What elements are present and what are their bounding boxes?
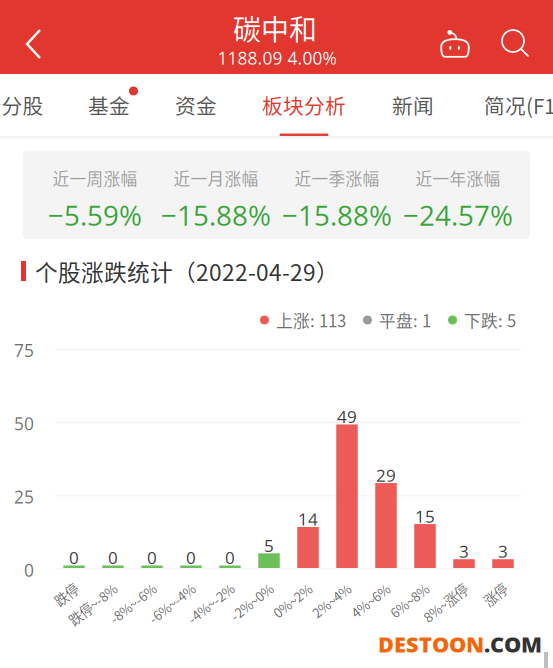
button[interactable]: 简况(F10 xyxy=(479,74,553,138)
staticText: 0 xyxy=(147,546,157,569)
staticText: −24.57% xyxy=(403,196,513,234)
staticText: 资金 xyxy=(175,90,217,120)
staticText: -6%~-4% xyxy=(144,594,199,613)
staticText: -4%~-2% xyxy=(183,594,238,613)
staticText: 板块分析 xyxy=(262,90,346,120)
staticText: 0 xyxy=(225,546,235,569)
staticText: 14 xyxy=(298,507,318,531)
staticText: 8%~涨停 xyxy=(419,593,471,612)
staticText: 近一季涨幅 xyxy=(294,166,379,190)
staticText: −15.88% xyxy=(161,196,271,234)
staticText: 49 xyxy=(337,405,357,428)
staticText: 涨停 xyxy=(482,585,508,604)
button[interactable]: 基金 xyxy=(63,74,155,138)
button[interactable]: 搜索 xyxy=(488,7,544,81)
staticText: 1188.09 4.00% xyxy=(217,46,336,70)
staticText: 0 xyxy=(108,546,118,569)
staticText: 跌停~-8% xyxy=(64,594,121,614)
staticText: −5.59% xyxy=(48,196,142,234)
staticText: 0 xyxy=(24,558,34,582)
button[interactable]: 新闻 xyxy=(367,74,459,138)
staticText: 50 xyxy=(14,412,34,435)
staticText: 0%~2% xyxy=(270,591,315,610)
staticText: −15.88% xyxy=(282,196,392,234)
staticText: .COM xyxy=(484,629,542,659)
button[interactable]: 智能助手 xyxy=(427,0,483,74)
staticText: 3 xyxy=(498,540,508,563)
staticText: 新闻 xyxy=(392,90,434,120)
staticText: -2%~0% xyxy=(227,592,277,612)
staticText: 15 xyxy=(415,504,435,528)
staticText: 跌停 xyxy=(53,585,79,604)
staticText: 近一周涨幅 xyxy=(52,166,137,190)
staticText: 0 xyxy=(186,546,196,569)
staticText: 个分股 xyxy=(0,90,43,120)
staticText: 个股涨跌统计（2022-04-29） xyxy=(35,255,339,287)
staticText: 基金 xyxy=(88,90,130,120)
staticText: 75 xyxy=(14,338,34,362)
staticText: 5 xyxy=(264,534,274,557)
staticText: -8%~-6% xyxy=(105,594,160,613)
staticText: 碳中和 xyxy=(233,8,317,48)
staticText: 平盘: 1 xyxy=(379,308,431,332)
staticText: 下跌: 5 xyxy=(464,308,516,332)
staticText: 近一年涨幅 xyxy=(415,166,500,190)
staticText: 上涨: 113 xyxy=(276,308,346,332)
staticText: 2%~4% xyxy=(309,591,354,610)
button[interactable]: 资金 xyxy=(150,74,242,138)
button[interactable]: 个分股 xyxy=(0,74,58,138)
staticText: 6%~8% xyxy=(387,591,432,610)
staticText: 29 xyxy=(376,463,396,487)
staticText: DESTOON xyxy=(378,629,484,659)
button[interactable]: 返回 xyxy=(5,7,63,81)
staticText: 近一月涨幅 xyxy=(173,166,258,190)
button[interactable]: 板块分析 xyxy=(258,74,350,138)
staticText: 4%~6% xyxy=(348,591,393,610)
staticText: 0 xyxy=(69,546,79,569)
staticText: 3 xyxy=(459,540,469,563)
staticText: 25 xyxy=(14,485,34,509)
staticText: 简况(F10 xyxy=(484,90,553,120)
